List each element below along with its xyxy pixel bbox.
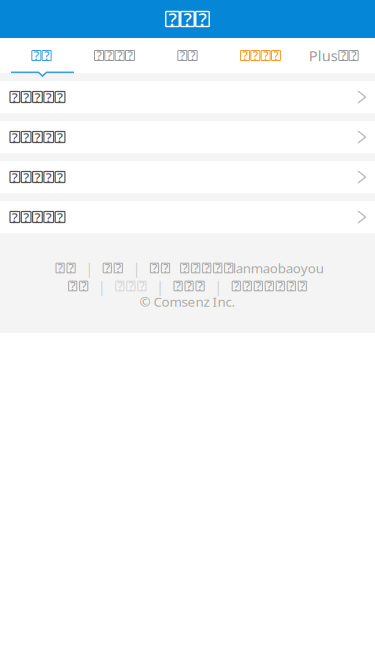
staticText: ? <box>204 260 209 276</box>
staticText: ? <box>341 47 346 63</box>
staticText: ? <box>12 208 18 226</box>
staticText: ? <box>46 168 52 186</box>
staticText: ? <box>351 47 356 63</box>
staticText: ? <box>34 128 40 146</box>
staticText: ? <box>187 278 192 294</box>
staticText: ? <box>23 128 29 146</box>
button[interactable]: Plus <box>297 38 370 73</box>
staticText: ? <box>163 260 168 276</box>
staticText: | <box>156 276 164 296</box>
staticText: ? <box>190 47 195 63</box>
button[interactable]: ? <box>56 263 75 273</box>
staticText: ? <box>180 47 185 63</box>
staticText: ? <box>289 278 294 294</box>
button[interactable]: ? <box>181 263 233 273</box>
staticText: | <box>98 276 106 296</box>
staticText: ? <box>34 47 39 63</box>
staticText: ? <box>267 278 272 294</box>
staticText: ? <box>34 88 40 106</box>
staticText: ? <box>57 88 63 106</box>
staticText: ? <box>12 88 18 106</box>
button[interactable]: ? <box>0 121 375 153</box>
staticText: ? <box>183 7 191 31</box>
staticText: ? <box>12 168 18 186</box>
staticText: ? <box>58 260 63 276</box>
button[interactable]: ? <box>232 281 306 291</box>
staticText: ? <box>226 260 231 276</box>
button[interactable]: ? <box>5 38 78 73</box>
staticText: ? <box>23 168 29 186</box>
button[interactable]: ? <box>78 38 151 73</box>
button[interactable]: ? <box>0 81 375 113</box>
staticText: ? <box>198 278 203 294</box>
staticText: ? <box>44 47 49 63</box>
staticText: ? <box>127 47 132 63</box>
staticText: ? <box>70 278 75 294</box>
staticText: ? <box>117 278 122 294</box>
staticText: ? <box>12 128 18 146</box>
button[interactable]: ? <box>150 263 170 273</box>
staticText: ? <box>273 47 278 63</box>
staticText: ? <box>152 260 157 276</box>
staticText: ? <box>117 47 122 63</box>
staticText: ? <box>168 7 176 31</box>
staticText: ? <box>107 47 112 63</box>
staticText: ? <box>46 88 52 106</box>
staticText: ? <box>176 278 181 294</box>
staticText: ? <box>81 278 86 294</box>
staticText: ? <box>139 278 144 294</box>
staticText: ? <box>116 260 121 276</box>
staticText: ? <box>234 278 239 294</box>
button[interactable]: ? <box>0 161 375 193</box>
staticText: | <box>214 276 222 296</box>
staticText: ? <box>57 168 63 186</box>
staticText: ? <box>243 47 248 63</box>
staticText: ? <box>23 88 29 106</box>
staticText: ? <box>96 47 101 63</box>
button[interactable]: ? <box>174 281 204 291</box>
staticText: ? <box>69 260 74 276</box>
staticText: ? <box>253 47 258 63</box>
staticText: ? <box>245 278 250 294</box>
staticText: ? <box>128 278 133 294</box>
button[interactable]: ? <box>151 38 224 73</box>
staticText: Plus <box>309 46 338 65</box>
button[interactable]: ? <box>0 201 375 233</box>
staticText: © Comsenz Inc. <box>139 293 235 310</box>
staticText: ? <box>23 208 29 226</box>
staticText: ? <box>46 128 52 146</box>
staticText: ? <box>215 260 220 276</box>
staticText: ? <box>57 128 63 146</box>
button[interactable]: ? <box>103 263 122 273</box>
staticText: ? <box>263 47 268 63</box>
staticText: ? <box>182 260 187 276</box>
staticText: lanmaobaoyou <box>233 259 324 277</box>
staticText: ? <box>34 168 40 186</box>
button[interactable]: ? <box>224 38 297 73</box>
staticText: ? <box>105 260 110 276</box>
staticText: ? <box>278 278 283 294</box>
staticText: ? <box>256 278 261 294</box>
staticText: ? <box>57 208 63 226</box>
staticText: ? <box>300 278 305 294</box>
staticText: | <box>85 258 93 278</box>
staticText: ? <box>34 208 40 226</box>
staticText: ? <box>198 7 206 31</box>
staticText: ? <box>193 260 198 276</box>
button[interactable]: ? <box>69 281 88 291</box>
staticText: | <box>132 258 140 278</box>
staticText: ? <box>46 208 52 226</box>
